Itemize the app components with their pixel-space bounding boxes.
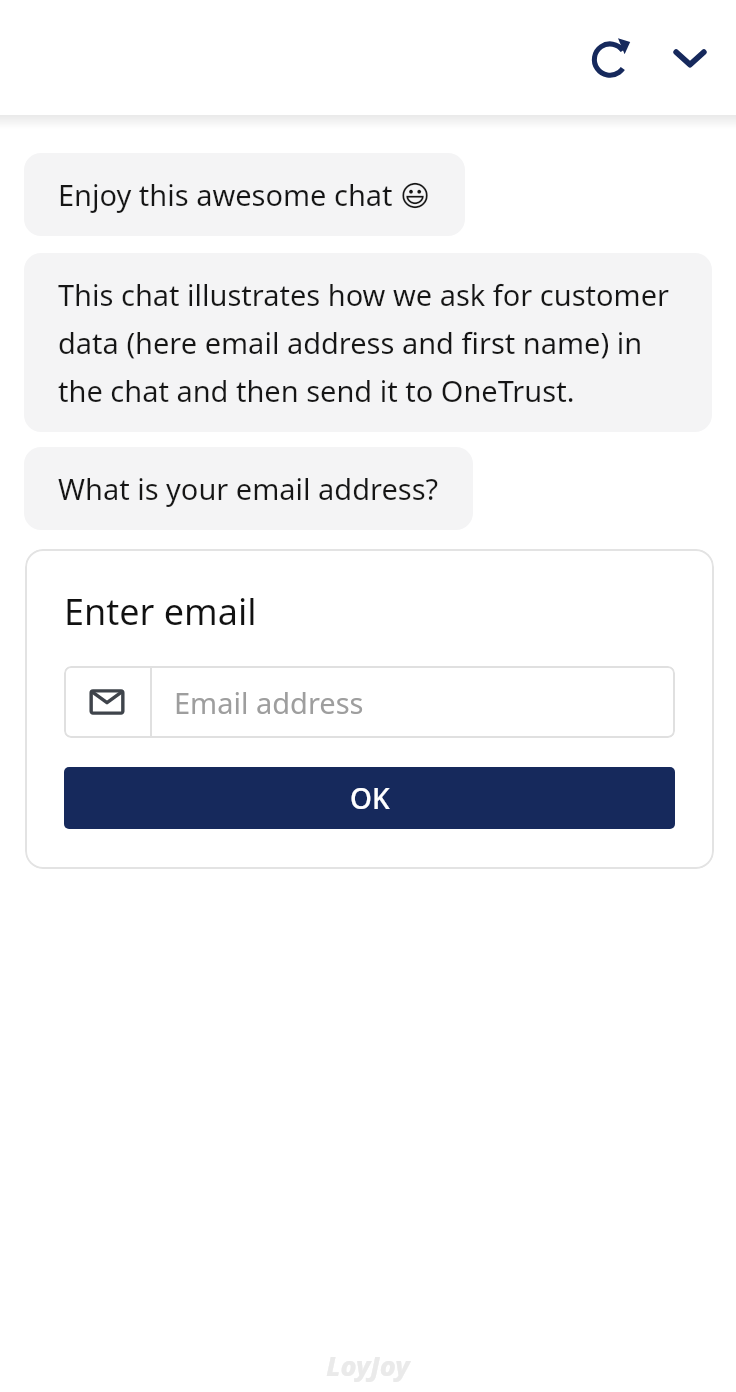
button[interactable]: This chat illustrates how we ask for cus… [24,253,712,432]
staticText: Enter email [64,587,257,636]
staticText: OK [350,779,390,817]
button[interactable]: Restart chat [574,22,646,94]
button[interactable]: Email address [64,666,675,738]
button[interactable]: What is your email address? [24,447,473,530]
button[interactable]: Minimize chat [654,22,726,94]
staticText: What is your email address? [58,469,439,508]
staticText: This chat illustrates how we ask for cus… [58,275,678,410]
button[interactable]: Enjoy this awesome chat 😃 [24,153,465,236]
button[interactable]: OK [64,767,675,829]
staticText: Email address [174,683,364,722]
staticText: LoyJoy [326,1347,410,1384]
staticText: Enjoy this awesome chat 😃 [58,175,431,214]
